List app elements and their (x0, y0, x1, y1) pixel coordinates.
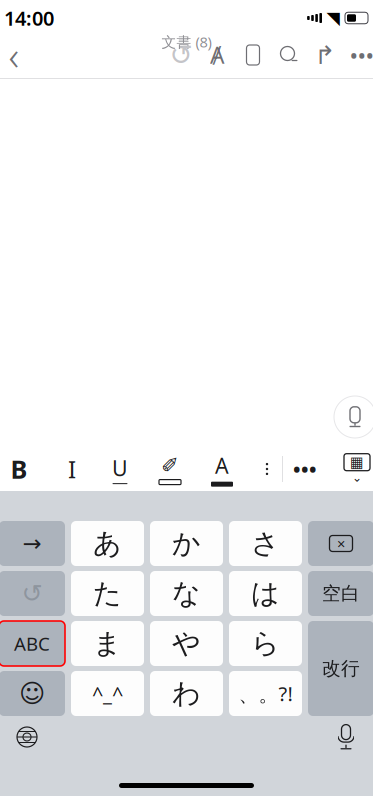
staticText: U (112, 454, 128, 482)
button[interactable]: More options (283, 449, 327, 489)
button[interactable]: → (0, 521, 65, 566)
staticText: A̸ (210, 40, 224, 70)
staticText: わ (172, 676, 201, 711)
button[interactable]: は (229, 571, 302, 616)
staticText: ま (93, 626, 122, 661)
button[interactable]: Highlight (148, 449, 192, 489)
staticText: ☺ (19, 679, 45, 708)
staticText: や (172, 626, 201, 661)
staticText: ら (251, 626, 280, 661)
staticText: 文書 (8) (161, 32, 211, 51)
button[interactable]: I (52, 449, 92, 489)
staticText: さ (251, 526, 280, 561)
staticText: ▦ (350, 454, 364, 470)
staticText: 空白 (322, 582, 360, 605)
button[interactable]: ま (71, 621, 144, 666)
button[interactable]: Dictate (329, 391, 373, 443)
button[interactable]: Hide keyboard (335, 449, 373, 489)
button[interactable]: 空白 (308, 571, 373, 616)
staticText: A (215, 451, 229, 480)
staticText: 14:00 (4, 5, 54, 31)
button[interactable]: ^_^ (71, 671, 144, 716)
staticText: ••• (293, 456, 317, 482)
staticText: ↺ (21, 579, 42, 608)
staticText: は (251, 576, 280, 611)
button[interactable]: ☺ (0, 671, 65, 716)
staticText: あ (93, 526, 122, 561)
staticText: ABC (14, 631, 50, 656)
staticText: I (68, 453, 76, 485)
button[interactable]: Next keyboard (0, 717, 54, 757)
staticText: ◥ (326, 8, 339, 28)
button[interactable]: Ink (199, 33, 235, 77)
button[interactable]: B (0, 449, 44, 489)
button[interactable]: あ (71, 521, 144, 566)
button[interactable]: た (71, 571, 144, 616)
staticText: × (337, 534, 345, 553)
button[interactable]: Back (0, 33, 36, 77)
button[interactable]: Delete (308, 521, 373, 566)
staticText: 、。?! (238, 680, 292, 707)
staticText: ⌄ (352, 471, 362, 484)
staticText: な (172, 576, 201, 611)
button[interactable]: U (100, 449, 140, 489)
staticText: ✐ (161, 453, 179, 478)
button[interactable]: 、。?! (229, 671, 302, 716)
staticText: ‹ (8, 28, 19, 81)
button[interactable]: Font color (200, 449, 244, 489)
staticText: B (10, 452, 27, 486)
button[interactable]: Share (307, 33, 343, 77)
staticText: ••• (350, 42, 373, 68)
button[interactable]: Mobile view (235, 33, 271, 77)
button[interactable]: や (150, 621, 223, 666)
button[interactable]: 改行 (308, 621, 373, 716)
staticText: た (93, 576, 122, 611)
button[interactable]: ら (229, 621, 302, 666)
button[interactable]: Undo (163, 33, 199, 77)
staticText: か (172, 526, 201, 561)
button[interactable]: さ (229, 521, 302, 566)
button[interactable]: More (343, 33, 373, 77)
button[interactable]: か (150, 521, 223, 566)
button[interactable]: わ (150, 671, 223, 716)
button[interactable]: More formatting (252, 449, 282, 489)
staticText: ↱ (314, 41, 335, 69)
staticText: ^_^ (92, 680, 123, 707)
button[interactable]: ↺ (0, 571, 65, 616)
button[interactable]: Search (271, 33, 307, 77)
button[interactable]: Dictate (319, 717, 373, 757)
staticText: → (22, 531, 41, 556)
staticText: 改行 (322, 657, 360, 680)
button[interactable]: ABC (0, 621, 65, 666)
staticText: ↺ (169, 39, 192, 71)
button[interactable]: な (150, 571, 223, 616)
